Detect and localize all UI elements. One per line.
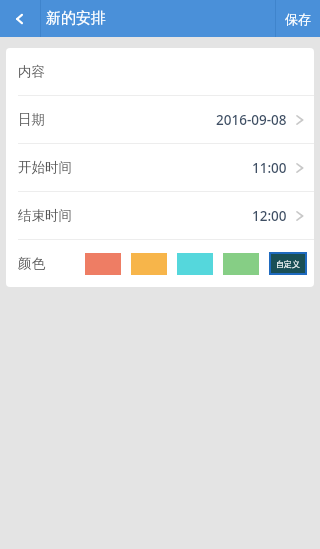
button[interactable]: 日期 (6, 96, 314, 144)
staticText: 结束时间 (18, 207, 72, 224)
staticText: 颜色 (18, 255, 45, 272)
button[interactable]: 结束时间 (6, 192, 314, 240)
button[interactable]: 保存 (276, 0, 320, 37)
staticText: 日期 (18, 111, 45, 128)
staticText: 12:00 (252, 207, 287, 225)
button[interactable]: 内容 (6, 48, 314, 96)
staticText: 自定义 (276, 259, 300, 269)
button[interactable]: 开始时间 (6, 144, 314, 192)
staticText: 11:00 (252, 159, 287, 177)
staticText: 新的安排 (46, 9, 106, 28)
staticText: 2016-09-08 (216, 111, 287, 129)
staticText: 内容 (18, 63, 45, 80)
button[interactable]: Back (0, 0, 40, 37)
button[interactable]: 自定义 (271, 254, 305, 273)
staticText: 保存 (285, 11, 311, 27)
staticText: 开始时间 (18, 159, 72, 176)
